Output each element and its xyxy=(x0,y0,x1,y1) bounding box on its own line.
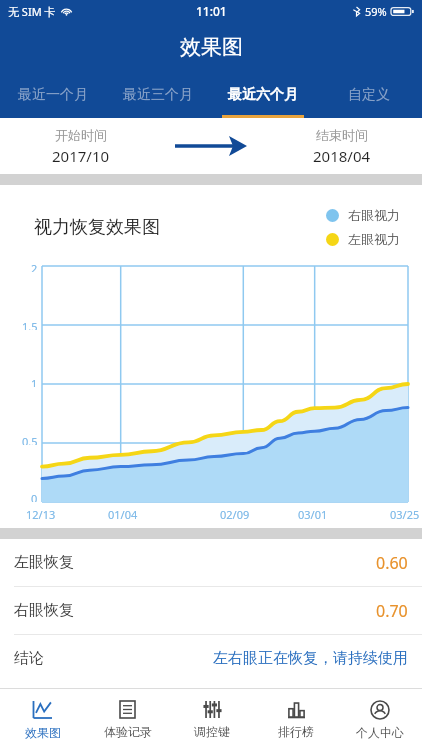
staticText: 2017/10 xyxy=(52,146,110,166)
staticText: 02/09 xyxy=(220,507,250,522)
staticText: 01/04 xyxy=(108,507,138,522)
staticText: 最近一个月 xyxy=(18,86,88,104)
other: 调控键 xyxy=(203,700,222,719)
button[interactable]: 调控键 xyxy=(170,689,254,750)
other: 体验记录 xyxy=(118,700,137,719)
staticText: 视力恢复效果图 xyxy=(34,216,160,239)
button[interactable]: 自定义 xyxy=(316,72,422,118)
staticText: 右眼视力 xyxy=(348,207,400,223)
staticText: 0 xyxy=(31,491,38,502)
button[interactable]: 体验记录 xyxy=(85,689,170,750)
staticText: 排行榜 xyxy=(278,724,314,739)
button[interactable]: 右眼恢复 xyxy=(0,587,422,634)
staticText: 开始时间 xyxy=(55,127,107,143)
staticText: 效果图 xyxy=(25,725,61,740)
button[interactable]: 结论 xyxy=(0,635,422,682)
button[interactable]: 开始时间 xyxy=(0,118,161,174)
staticText: 结论 xyxy=(14,649,44,668)
other: 效果图 xyxy=(32,699,53,720)
staticText: 右眼恢复 xyxy=(14,601,74,620)
staticText: 1 xyxy=(31,376,38,387)
staticText: 59% xyxy=(365,4,387,19)
staticText: 0.70 xyxy=(376,600,408,622)
staticText: 调控键 xyxy=(194,724,230,739)
staticText: 03/01 xyxy=(298,507,328,522)
button[interactable]: 最近一个月 xyxy=(0,72,105,118)
button[interactable]: 个人中心 xyxy=(338,689,422,750)
staticText: 2018/04 xyxy=(313,146,371,166)
staticText: 左右眼正在恢复，请持续使用 xyxy=(213,649,408,668)
staticText: 个人中心 xyxy=(356,725,404,740)
button[interactable]: 排行榜 xyxy=(254,689,338,750)
staticText: 11:01 xyxy=(196,3,227,19)
staticText: 0.5 xyxy=(22,434,38,445)
button[interactable]: 效果图 xyxy=(0,689,85,750)
staticText: 体验记录 xyxy=(104,724,152,739)
other: 个人中心 xyxy=(370,700,390,720)
button[interactable]: 最近三个月 xyxy=(105,72,210,118)
other: 排行榜 xyxy=(287,700,306,719)
staticText: 2 xyxy=(31,261,38,272)
staticText: 左眼恢复 xyxy=(14,553,74,572)
staticText: 1.5 xyxy=(22,319,38,330)
button[interactable]: 最近六个月 xyxy=(210,72,316,118)
button[interactable]: 左眼恢复 xyxy=(0,539,422,586)
staticText: 最近六个月 xyxy=(228,86,298,104)
staticText: 最近三个月 xyxy=(123,86,193,104)
staticText: 结束时间 xyxy=(316,127,368,143)
staticText: 效果图 xyxy=(180,34,243,60)
staticText: 03/25 xyxy=(390,507,420,522)
staticText: 12/13 xyxy=(26,507,56,522)
staticText: 自定义 xyxy=(348,86,390,104)
staticText: 0.60 xyxy=(376,552,408,574)
button[interactable]: 结束时间 xyxy=(261,118,422,174)
staticText: 左眼视力 xyxy=(348,231,400,247)
staticText: 无 SIM 卡 xyxy=(8,4,56,19)
